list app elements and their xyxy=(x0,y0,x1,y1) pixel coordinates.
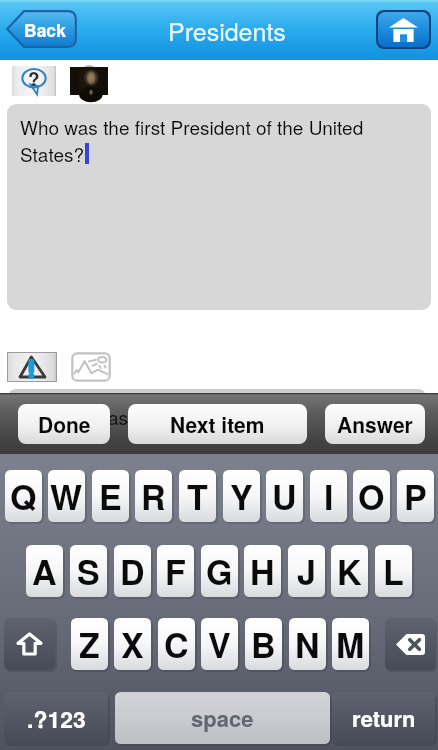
button[interactable]: R xyxy=(135,470,172,522)
staticText: K xyxy=(337,547,362,596)
staticText: O xyxy=(358,472,385,521)
button[interactable]: Home xyxy=(378,12,429,47)
staticText: Y xyxy=(230,472,253,521)
button[interactable]: Y xyxy=(223,470,260,522)
button[interactable]: G xyxy=(201,545,238,597)
button[interactable]: W xyxy=(48,470,85,522)
staticText: B xyxy=(251,620,276,669)
button[interactable]: L xyxy=(375,545,412,597)
staticText: P xyxy=(404,472,427,521)
staticText: T xyxy=(187,472,208,521)
staticText: M xyxy=(336,620,365,669)
button[interactable]: U xyxy=(266,470,303,522)
staticText: D xyxy=(120,547,145,596)
button[interactable]: J xyxy=(288,545,325,597)
button[interactable]: Answer xyxy=(325,404,425,444)
button[interactable]: Who was the first President of the Unite… xyxy=(7,104,431,310)
staticText: S xyxy=(77,547,100,596)
button[interactable]: .?123 xyxy=(4,692,108,744)
button[interactable] xyxy=(4,618,55,670)
button[interactable]: K xyxy=(331,545,368,597)
staticText: return xyxy=(352,702,416,734)
staticText: N xyxy=(295,620,320,669)
staticText: W xyxy=(50,472,83,521)
button[interactable]: Portrait of George Washington xyxy=(70,67,108,95)
button[interactable]: A xyxy=(26,545,63,597)
staticText: H xyxy=(250,547,275,596)
button[interactable]: Q xyxy=(5,470,42,522)
button[interactable]: return xyxy=(332,692,435,744)
staticText: X xyxy=(121,620,144,669)
staticText: G xyxy=(206,547,233,596)
button[interactable]: Question xyxy=(12,66,56,96)
staticText: .?123 xyxy=(27,702,86,735)
staticText: E xyxy=(99,472,122,521)
button[interactable]: Back xyxy=(6,10,77,48)
button[interactable]: Done xyxy=(18,404,110,444)
staticText: Presidents xyxy=(168,12,286,48)
button[interactable]: space xyxy=(115,692,330,744)
button[interactable]: S xyxy=(70,545,107,597)
staticText: V xyxy=(208,620,231,669)
staticText: ? xyxy=(28,65,40,92)
staticText: C xyxy=(164,620,189,669)
button[interactable]: M xyxy=(332,618,369,670)
other: Backspace xyxy=(385,618,437,673)
staticText: as xyxy=(108,403,129,430)
staticText: L xyxy=(383,547,404,596)
staticText: Answer xyxy=(337,409,413,439)
button[interactable]: F xyxy=(157,545,194,597)
staticText: Z xyxy=(79,620,100,669)
button[interactable]: H xyxy=(244,545,281,597)
button[interactable]: Warning xyxy=(8,353,56,381)
staticText: Back xyxy=(24,17,66,42)
button[interactable]: X xyxy=(114,618,151,670)
button[interactable]: B xyxy=(245,618,282,670)
staticText: U xyxy=(272,472,297,521)
button[interactable]: T xyxy=(179,470,216,522)
staticText: I xyxy=(324,472,334,521)
staticText: J xyxy=(297,547,316,596)
button[interactable]: E xyxy=(92,470,129,522)
button[interactable]: N xyxy=(289,618,326,670)
staticText: R xyxy=(141,472,166,521)
button[interactable]: D xyxy=(114,545,151,597)
button[interactable] xyxy=(385,618,435,670)
button[interactable]: V xyxy=(201,618,238,670)
staticText: space xyxy=(191,702,254,734)
button[interactable]: Z xyxy=(71,618,108,670)
button[interactable]: I xyxy=(310,470,347,522)
staticText: Q xyxy=(10,472,37,521)
staticText: Done xyxy=(38,409,91,439)
other: Shift xyxy=(4,618,57,673)
button[interactable]: Image xyxy=(71,352,111,382)
staticText: Who was the first President of the Unite… xyxy=(20,113,364,140)
staticText: A xyxy=(32,547,57,596)
staticText: F xyxy=(165,547,186,596)
button[interactable]: Next item xyxy=(128,404,307,444)
button[interactable]: P xyxy=(397,470,434,522)
button[interactable]: O xyxy=(353,470,390,522)
staticText: States? xyxy=(20,140,85,167)
button[interactable]: C xyxy=(158,618,195,670)
staticText: Next item xyxy=(170,409,265,439)
